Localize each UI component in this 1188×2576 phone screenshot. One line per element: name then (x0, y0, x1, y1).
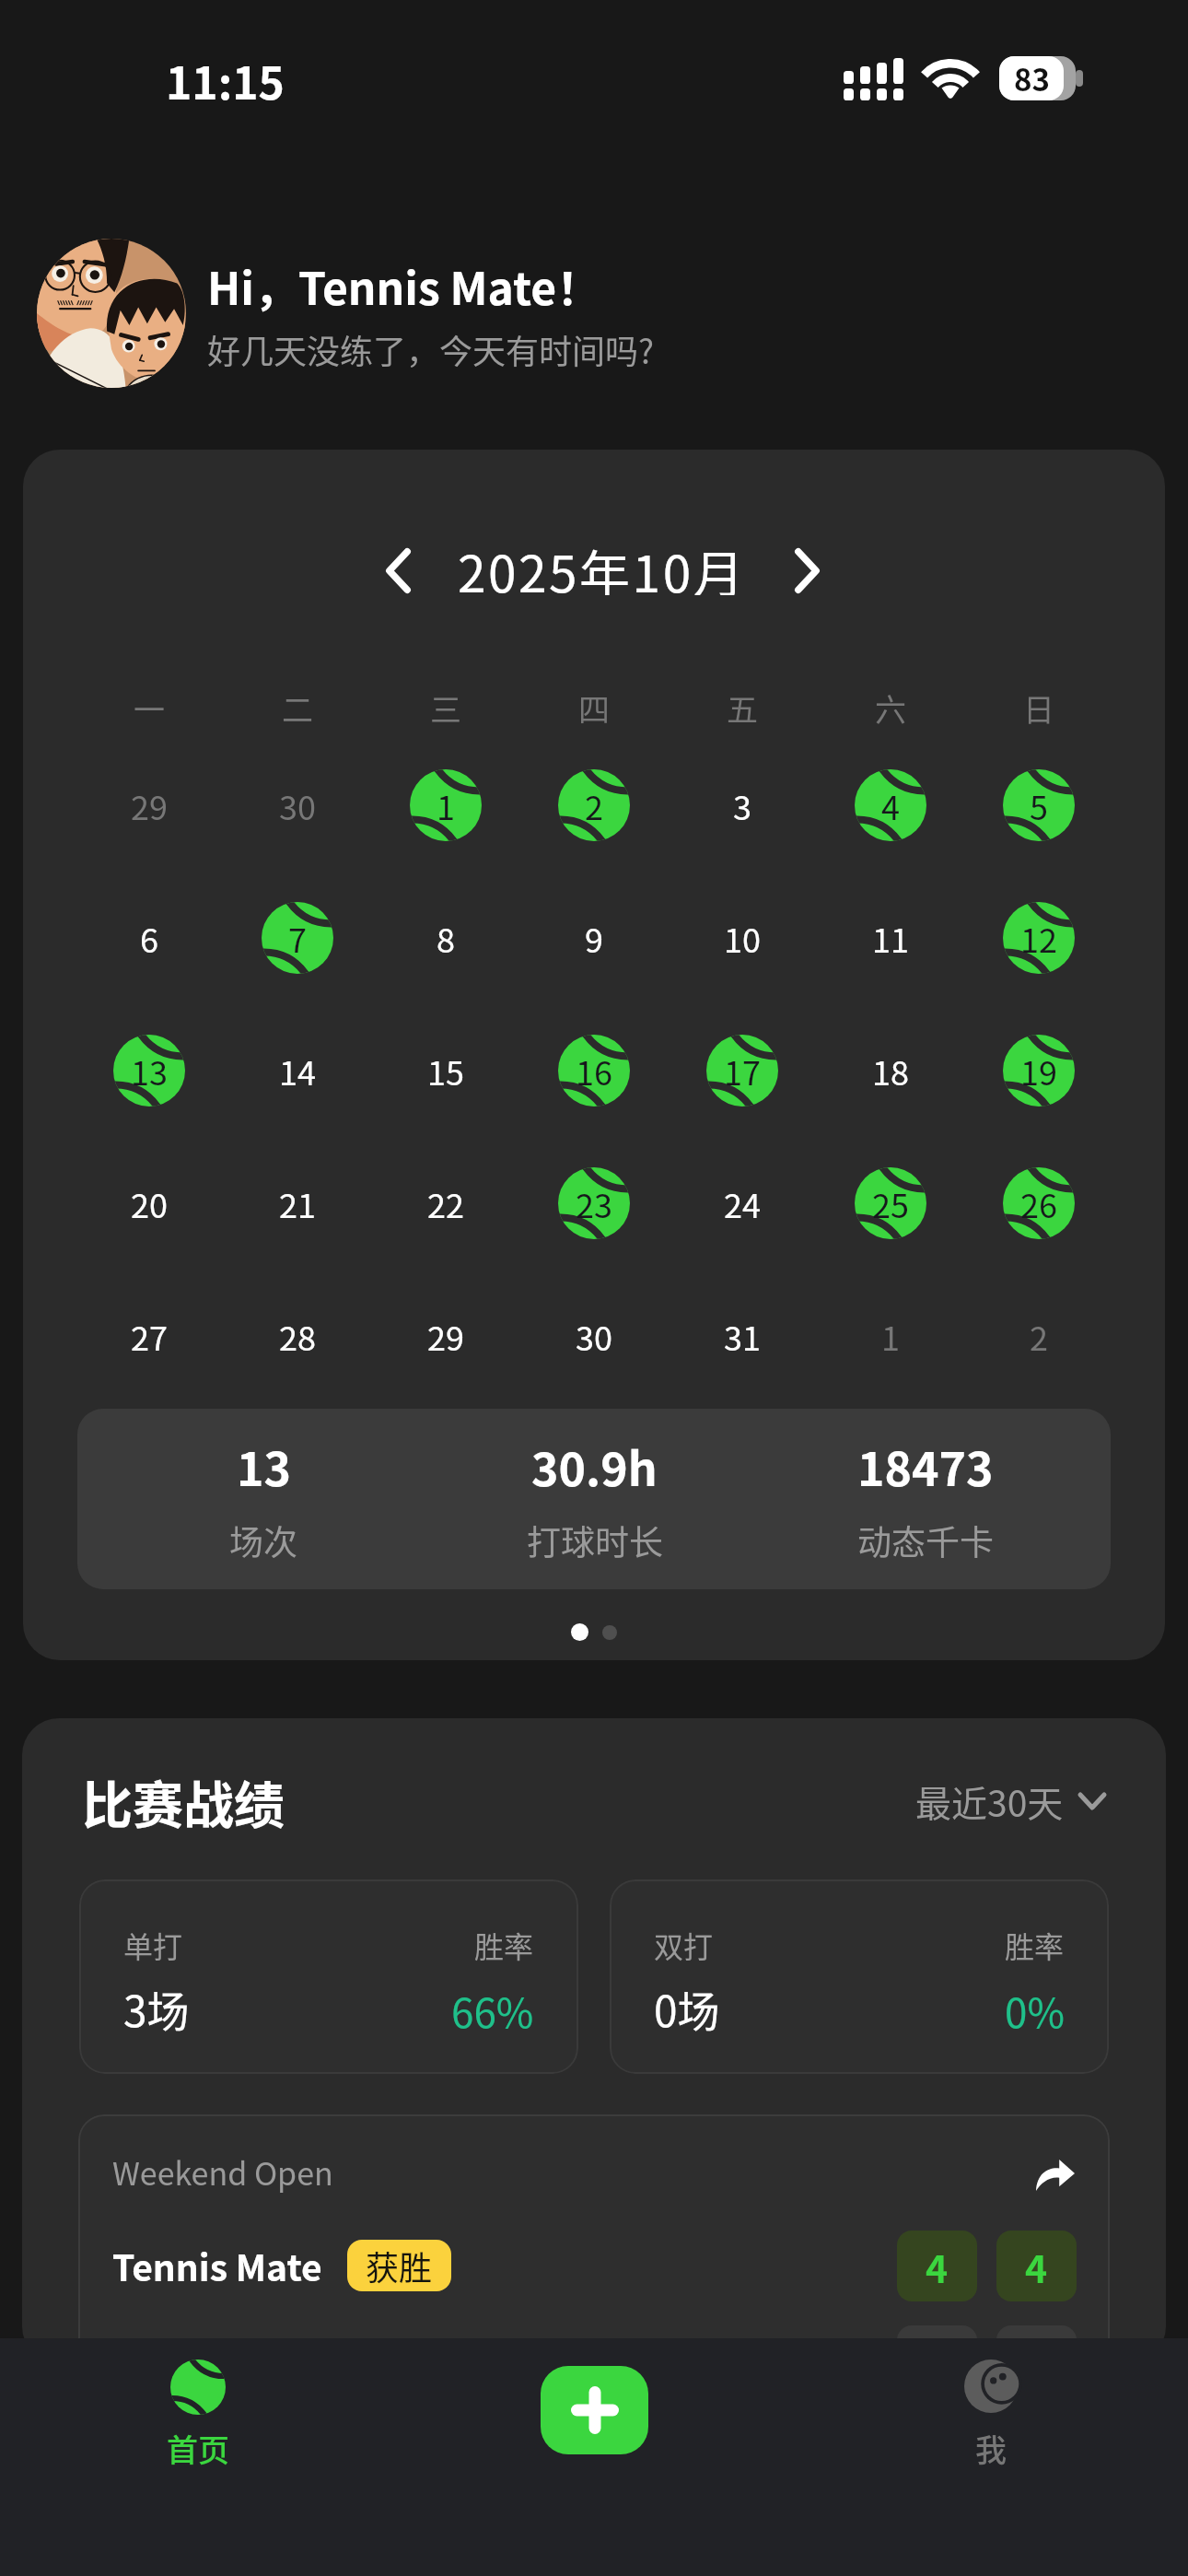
staticText: 3 (733, 781, 751, 829)
staticText: Weekend Open (112, 2149, 333, 2195)
button[interactable]: 28 (223, 1288, 371, 1384)
staticText: 15 (427, 1047, 464, 1095)
staticText: 24 (724, 1179, 761, 1227)
staticText: 最近30天 (915, 1775, 1064, 1827)
staticText: 7 (288, 914, 307, 962)
staticText: 21 (279, 1179, 316, 1227)
staticText: 双打 (654, 1924, 714, 1966)
staticText: 5 (1030, 781, 1048, 829)
staticText: 打球时长 (527, 1516, 663, 1565)
button[interactable]: 22 (371, 1155, 519, 1251)
button[interactable]: 单打 (79, 1879, 578, 2074)
button[interactable]: 9 (519, 890, 668, 986)
staticText: 11 (872, 914, 909, 962)
staticText: 0场 (654, 1978, 720, 2040)
button[interactable]: 首页 (115, 2338, 281, 2576)
staticText: 6 (140, 914, 158, 962)
staticText: 9 (585, 914, 603, 962)
staticText: 18 (872, 1047, 909, 1095)
staticText: 28 (279, 1312, 316, 1360)
staticText: 4 (881, 781, 900, 829)
staticText: 场次 (229, 1516, 297, 1565)
staticText: 0% (1005, 1981, 1065, 2040)
button[interactable]: 双打 (610, 1879, 1109, 2074)
staticText: 单打 (123, 1924, 183, 1966)
button[interactable]: 18 (816, 1023, 964, 1118)
staticText: 胜率 (1005, 1924, 1065, 1966)
staticText: 比赛战绩 (82, 1764, 285, 1838)
staticText: 好几天没练了，今天有时间吗? (207, 325, 655, 373)
staticText: 10 (724, 914, 761, 962)
button[interactable]: 29 (371, 1288, 519, 1384)
button[interactable]: 1 (371, 757, 519, 853)
staticText: 胜率 (474, 1924, 534, 1966)
staticText: 4 (926, 2239, 949, 2293)
button[interactable]: 30 (223, 757, 371, 853)
staticText: 25 (872, 1179, 909, 1227)
staticText: Tennis Mate (112, 2240, 322, 2291)
button[interactable]: 6 (76, 890, 223, 986)
button[interactable]: 21 (223, 1155, 371, 1251)
button[interactable]: 13 (76, 1023, 223, 1118)
button[interactable]: 4 (816, 757, 964, 853)
staticText: 11:15 (166, 48, 285, 112)
staticText: 17 (724, 1047, 761, 1095)
staticText: 66% (451, 1981, 534, 2040)
button[interactable]: 23 (519, 1155, 668, 1251)
staticText: 1 (881, 1312, 900, 1360)
button[interactable]: Add record (541, 2366, 648, 2454)
button[interactable]: 24 (668, 1155, 816, 1251)
staticText: 13 (237, 1433, 291, 1499)
button[interactable]: 12 (964, 890, 1112, 986)
button[interactable]: Weekend Open (78, 2114, 1110, 2363)
staticText: 2 (1025, 2334, 1048, 2363)
button[interactable]: 19 (964, 1023, 1112, 1118)
staticText: 4 (1025, 2239, 1048, 2293)
staticText: 我 (975, 2426, 1007, 2471)
staticText: 一 (134, 685, 165, 731)
button[interactable]: 17 (668, 1023, 816, 1118)
button[interactable]: 我 (908, 2338, 1074, 2576)
button[interactable]: 最近30天 (915, 1768, 1106, 1834)
button[interactable]: Next month (772, 540, 842, 602)
staticText: 14 (279, 1047, 316, 1095)
staticText: 三 (430, 685, 461, 731)
button[interactable]: Previous month (363, 540, 433, 602)
staticText: 2025年10月 (458, 533, 747, 595)
button[interactable]: 20 (76, 1155, 223, 1251)
staticText: 2 (585, 781, 603, 829)
button[interactable]: 2 (964, 1288, 1112, 1384)
staticText: 1 (437, 781, 455, 829)
staticText: 23 (576, 1179, 612, 1227)
staticText: Hi，Tennis Mate！ (207, 253, 601, 318)
button[interactable]: 29 (76, 757, 223, 853)
staticText: 26 (1020, 1179, 1057, 1227)
staticText: 83 (1014, 56, 1050, 100)
staticText: 30.9h (531, 1433, 658, 1499)
button[interactable]: 2 (519, 757, 668, 853)
button[interactable]: 11 (816, 890, 964, 986)
button[interactable]: 30 (519, 1288, 668, 1384)
button[interactable]: Share (1036, 2160, 1075, 2191)
button[interactable]: 5 (964, 757, 1112, 853)
button[interactable]: 15 (371, 1023, 519, 1118)
button[interactable]: 31 (668, 1288, 816, 1384)
staticText: 12 (1020, 914, 1057, 962)
staticText: 六 (875, 685, 906, 731)
button[interactable]: 16 (519, 1023, 668, 1118)
button[interactable]: 10 (668, 890, 816, 986)
button[interactable]: 3 (668, 757, 816, 853)
button[interactable]: 26 (964, 1155, 1112, 1251)
button[interactable]: 8 (371, 890, 519, 986)
button[interactable]: 25 (816, 1155, 964, 1251)
button[interactable]: 14 (223, 1023, 371, 1118)
staticText: 动态千卡 (857, 1516, 994, 1565)
staticText: 四 (578, 685, 610, 731)
staticText: 20 (131, 1179, 168, 1227)
button[interactable]: 27 (76, 1288, 223, 1384)
staticText: 8 (437, 914, 455, 962)
button[interactable]: 1 (816, 1288, 964, 1384)
button[interactable]: 7 (223, 890, 371, 986)
staticText: 3场 (123, 1978, 190, 2040)
staticText: 首页 (167, 2426, 229, 2471)
